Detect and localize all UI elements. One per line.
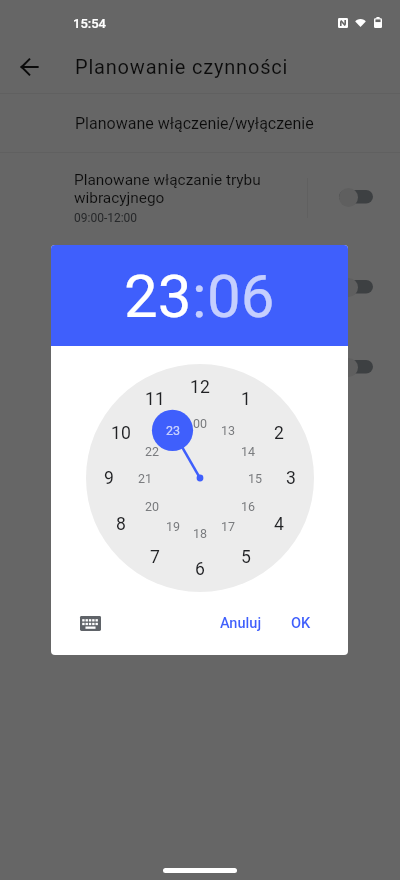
staticText: Planowanie czynności <box>75 55 289 78</box>
staticText: 16 <box>241 499 256 514</box>
staticText: 12 <box>190 377 210 398</box>
staticText: OK <box>291 614 311 631</box>
staticText: 22:00-07:00 <box>74 381 138 395</box>
staticText: 15 <box>248 471 263 486</box>
staticText: 2 <box>274 423 284 444</box>
staticText: 6 <box>195 559 205 580</box>
staticText: 5 <box>241 547 251 568</box>
staticText: Planowane włączanie trybu cichego <box>74 261 261 297</box>
button[interactable]: Anuluj <box>212 606 270 639</box>
button[interactable]: 23 <box>124 261 192 331</box>
staticText: : <box>192 261 207 331</box>
button[interactable]: Toggle <box>308 153 400 242</box>
staticText: 1 <box>241 389 251 410</box>
staticText: 18 <box>193 526 208 541</box>
staticText: 15:54 <box>73 16 107 31</box>
button[interactable]: Back <box>12 50 46 84</box>
staticText: 11 <box>145 389 165 410</box>
button[interactable]: Planowane włączenie/wyłączenie <box>0 94 400 152</box>
staticText: 19 <box>166 519 181 534</box>
button[interactable]: 06 <box>207 261 275 331</box>
staticText: Planowane włączanie trybu wibracyjnego <box>74 171 261 207</box>
staticText: 09:00-12:00 <box>74 211 138 225</box>
staticText: 13 <box>221 423 236 438</box>
staticText: 17 <box>221 519 236 534</box>
button[interactable]: Switch to keyboard input <box>75 608 105 638</box>
staticText: 8 <box>116 514 126 535</box>
staticText: 14:00-16:00 <box>74 301 138 315</box>
button[interactable]: OK <box>283 606 319 639</box>
button[interactable]: Planowane wyłączanie powiadomień <box>0 333 307 402</box>
staticText: 21 <box>138 471 153 486</box>
button[interactable]: Toggle <box>308 242 400 333</box>
staticText: 14 <box>241 444 256 459</box>
staticText: 00 <box>193 416 208 431</box>
staticText: Planowane wyłączanie powiadomień <box>74 341 230 377</box>
staticText: 10 <box>111 423 131 444</box>
staticText: 22 <box>145 444 160 459</box>
staticText: 23 <box>166 423 181 438</box>
button[interactable]: Toggle <box>308 333 400 402</box>
staticText: 9 <box>104 468 114 489</box>
button[interactable]: Planowane włączanie trybu wibracyjnego <box>0 153 307 242</box>
staticText: 3 <box>286 468 296 489</box>
staticText: 4 <box>274 514 284 535</box>
staticText: 7 <box>150 547 160 568</box>
staticText: 20 <box>145 499 160 514</box>
staticText: Planowane włączenie/wyłączenie <box>75 114 314 133</box>
button[interactable]: Planowane włączanie trybu cichego <box>0 242 307 333</box>
staticText: Anuluj <box>220 614 262 631</box>
